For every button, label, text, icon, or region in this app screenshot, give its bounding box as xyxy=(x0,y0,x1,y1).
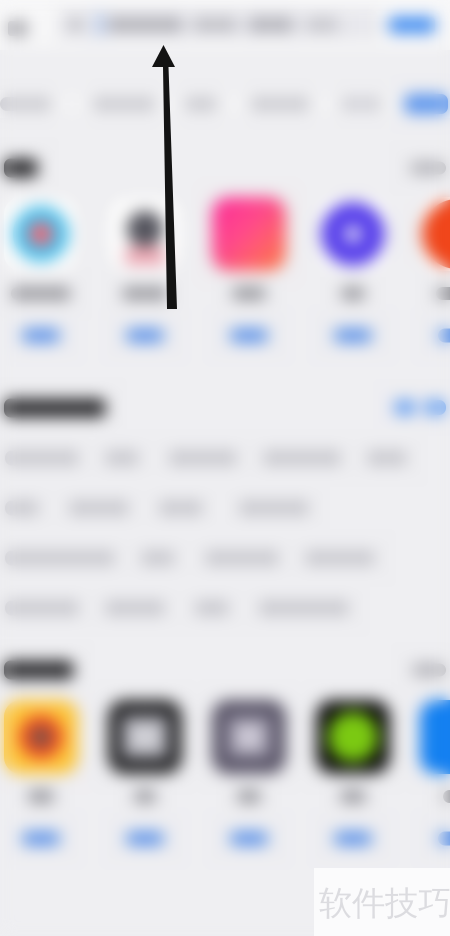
button[interactable]: See all xyxy=(412,663,446,676)
button[interactable] xyxy=(340,97,382,111)
button[interactable] xyxy=(239,500,309,515)
button[interactable]: Get xyxy=(431,828,450,849)
button[interactable] xyxy=(263,450,341,465)
button[interactable] xyxy=(141,550,175,565)
button[interactable] xyxy=(5,500,39,515)
button[interactable] xyxy=(4,197,78,346)
button[interactable] xyxy=(316,700,390,849)
button[interactable]: Get xyxy=(327,828,379,849)
button[interactable]: Edit xyxy=(394,400,416,415)
button[interactable] xyxy=(316,197,390,346)
staticText: 软件技巧 xyxy=(319,883,450,924)
button[interactable] xyxy=(0,97,52,111)
button[interactable]: Cancel xyxy=(383,11,441,39)
button[interactable] xyxy=(305,550,375,565)
button[interactable]: Get xyxy=(223,325,275,346)
button[interactable]: Get xyxy=(327,325,379,346)
button[interactable] xyxy=(212,197,286,346)
button[interactable] xyxy=(4,700,78,849)
button[interactable]: Get xyxy=(15,828,67,849)
button[interactable] xyxy=(169,450,237,465)
button[interactable] xyxy=(420,700,450,849)
button[interactable] xyxy=(420,197,450,346)
button[interactable]: Get xyxy=(431,325,450,346)
button[interactable] xyxy=(205,550,279,565)
button[interactable]: Get xyxy=(223,828,275,849)
button[interactable] xyxy=(259,600,349,615)
button[interactable] xyxy=(195,600,229,615)
button[interactable] xyxy=(159,500,203,515)
button[interactable] xyxy=(250,97,310,111)
button[interactable] xyxy=(404,94,448,114)
button[interactable] xyxy=(212,700,286,849)
button[interactable] xyxy=(92,97,156,111)
button[interactable] xyxy=(69,500,129,515)
button[interactable]: Get xyxy=(119,828,171,849)
button[interactable]: Back xyxy=(0,13,35,44)
button[interactable] xyxy=(105,450,139,465)
button[interactable] xyxy=(367,450,407,465)
button[interactable] xyxy=(5,550,115,565)
button[interactable] xyxy=(184,97,218,111)
button[interactable] xyxy=(108,700,182,849)
button[interactable]: See all xyxy=(410,161,446,174)
button[interactable] xyxy=(5,450,79,465)
button[interactable] xyxy=(5,600,79,615)
button[interactable]: Get xyxy=(15,325,67,346)
button[interactable]: Clear xyxy=(424,400,446,415)
button[interactable] xyxy=(108,197,182,346)
button[interactable] xyxy=(105,600,165,615)
button[interactable]: Get xyxy=(119,325,171,346)
